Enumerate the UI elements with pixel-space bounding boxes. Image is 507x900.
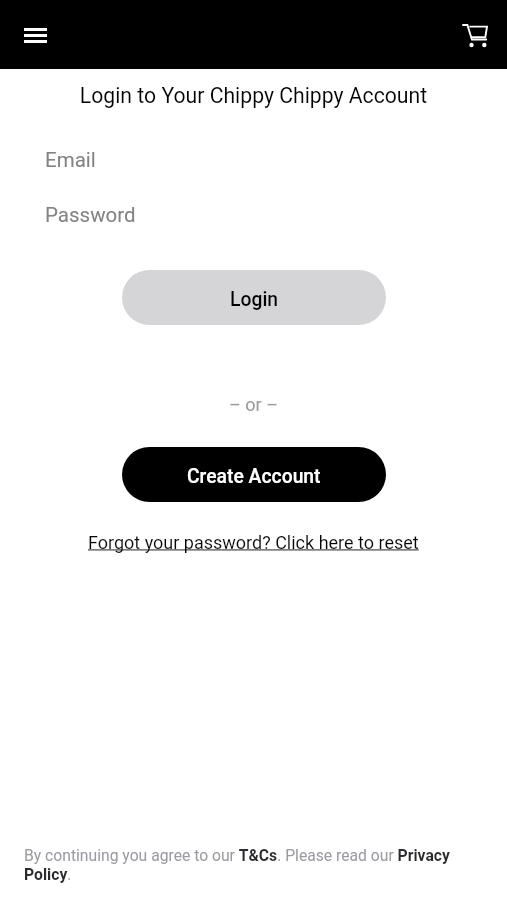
staticText: Email [45, 148, 96, 172]
staticText: – or – [0, 394, 507, 415]
staticText: Login [230, 288, 279, 311]
staticText: Password [45, 203, 136, 227]
button[interactable]: Cart [451, 11, 499, 59]
staticText: Forgot your password? Click here to rese… [88, 532, 419, 553]
staticText: Create Account [187, 465, 321, 488]
button[interactable]: Password [0, 193, 507, 237]
button[interactable]: Email [0, 138, 507, 182]
staticText: By continuing you agree to our T&Cs. Ple… [24, 846, 487, 884]
button[interactable]: Forgot your password? Click here to rese… [84, 530, 423, 555]
button[interactable]: Menu [11, 11, 59, 59]
staticText: Login to Your Chippy Chippy Account [0, 83, 507, 108]
button[interactable]: Create Account [122, 447, 386, 502]
button[interactable]: Login [122, 270, 386, 325]
